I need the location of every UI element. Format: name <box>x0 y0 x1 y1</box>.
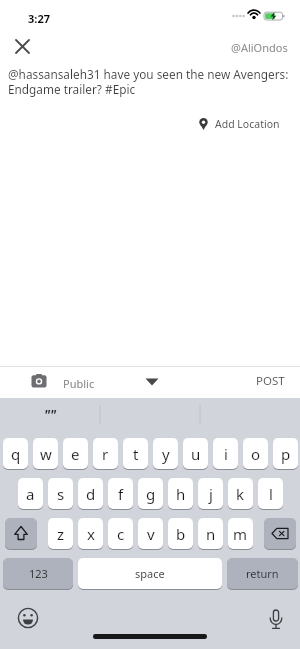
button[interactable]: a <box>18 478 43 509</box>
button[interactable]: z <box>48 518 73 549</box>
button[interactable]: x <box>78 518 103 549</box>
button[interactable] <box>262 607 290 635</box>
button[interactable]: POST <box>256 373 285 389</box>
staticText: n <box>206 524 216 544</box>
staticText: t <box>133 444 139 464</box>
staticText: j <box>209 484 213 504</box>
button[interactable]: Public <box>58 368 164 394</box>
staticText: i <box>224 444 228 464</box>
staticText: b <box>176 524 186 544</box>
button[interactable]: space <box>78 558 222 589</box>
staticText: return <box>246 566 279 581</box>
staticText: p <box>281 444 291 464</box>
button[interactable]: f <box>108 478 133 509</box>
staticText: 3:27 <box>28 11 50 26</box>
button[interactable]: i <box>213 438 238 469</box>
staticText: d <box>86 484 96 504</box>
button[interactable] <box>5 518 37 549</box>
button[interactable]: "" <box>0 400 100 429</box>
staticText: e <box>71 444 80 464</box>
button[interactable]: h <box>168 478 193 509</box>
staticText: w <box>40 444 52 464</box>
button[interactable]: c <box>108 518 133 549</box>
button[interactable] <box>28 371 54 393</box>
staticText: 123 <box>29 566 48 581</box>
staticText: o <box>251 444 261 464</box>
button[interactable]: o <box>243 438 268 469</box>
staticText: r <box>102 444 109 464</box>
button[interactable]: return <box>227 558 298 589</box>
button[interactable]: n <box>198 518 223 549</box>
button[interactable]: r <box>93 438 118 469</box>
button[interactable]: d <box>78 478 103 509</box>
staticText: @hassansaleh31 have you seen the new Ave… <box>8 66 289 97</box>
staticText: q <box>11 444 21 464</box>
staticText: k <box>236 484 245 504</box>
staticText: "" <box>44 406 57 424</box>
button[interactable]: Add Location <box>198 117 280 131</box>
button[interactable]: t <box>123 438 148 469</box>
staticText: y <box>162 444 170 464</box>
staticText: h <box>176 484 186 504</box>
staticText: g <box>146 484 156 504</box>
staticText: z <box>57 524 65 544</box>
button[interactable]: l <box>258 478 283 509</box>
button[interactable]: q <box>3 438 28 469</box>
button[interactable]: e <box>63 438 88 469</box>
staticText: f <box>118 484 124 504</box>
button[interactable]: g <box>138 478 163 509</box>
staticText: Add Location <box>215 117 280 131</box>
button[interactable] <box>14 604 42 632</box>
button[interactable]: p <box>273 438 298 469</box>
button[interactable]: v <box>138 518 163 549</box>
staticText: c <box>117 524 125 544</box>
button[interactable] <box>10 35 36 60</box>
staticText: x <box>87 524 95 544</box>
button[interactable]: u <box>183 438 208 469</box>
button[interactable]: 123 <box>3 558 73 589</box>
button[interactable]: b <box>168 518 193 549</box>
staticText: l <box>269 484 273 504</box>
button[interactable]: m <box>228 518 253 549</box>
button[interactable]: j <box>198 478 223 509</box>
staticText: @AliOndos <box>231 40 288 55</box>
staticText: v <box>147 524 155 544</box>
button[interactable]: k <box>228 478 253 509</box>
button[interactable] <box>264 518 296 549</box>
staticText: s <box>57 484 65 504</box>
staticText: space <box>135 566 165 581</box>
staticText: a <box>26 484 35 504</box>
staticText: m <box>233 524 248 544</box>
button[interactable]: w <box>33 438 58 469</box>
staticText: POST <box>256 373 285 389</box>
button[interactable]: s <box>48 478 73 509</box>
button[interactable]: y <box>153 438 178 469</box>
staticText: u <box>191 444 201 464</box>
staticText: Public <box>63 376 95 391</box>
